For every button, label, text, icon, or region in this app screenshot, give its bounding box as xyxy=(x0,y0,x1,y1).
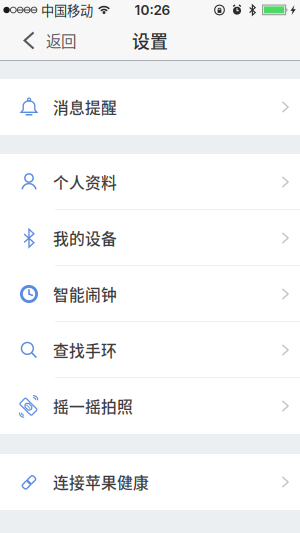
staticText: 消息提醒 xyxy=(53,96,117,118)
button[interactable]: 连接苹果健康 xyxy=(0,454,300,510)
button[interactable]: 摇一摇拍照 xyxy=(0,378,300,434)
staticText: 摇一摇拍照 xyxy=(53,395,133,417)
staticText: 中国移动 xyxy=(41,0,93,19)
staticText: 我的设备 xyxy=(53,227,117,249)
button[interactable]: 返回 xyxy=(0,20,88,61)
button[interactable]: 查找手环 xyxy=(0,322,300,378)
staticText: 个人资料 xyxy=(53,171,117,193)
staticText: 智能闹钟 xyxy=(53,283,117,305)
staticText: 连接苹果健康 xyxy=(53,471,149,493)
staticText: 返回 xyxy=(46,29,76,52)
staticText: 设置 xyxy=(132,28,168,53)
staticText: 10:26 xyxy=(134,2,170,18)
staticText: 查找手环 xyxy=(53,339,117,361)
button[interactable]: 消息提醒 xyxy=(0,79,300,135)
button[interactable]: 个人资料 xyxy=(0,154,300,210)
button[interactable]: 我的设备 xyxy=(0,210,300,266)
button[interactable]: 智能闹钟 xyxy=(0,266,300,322)
